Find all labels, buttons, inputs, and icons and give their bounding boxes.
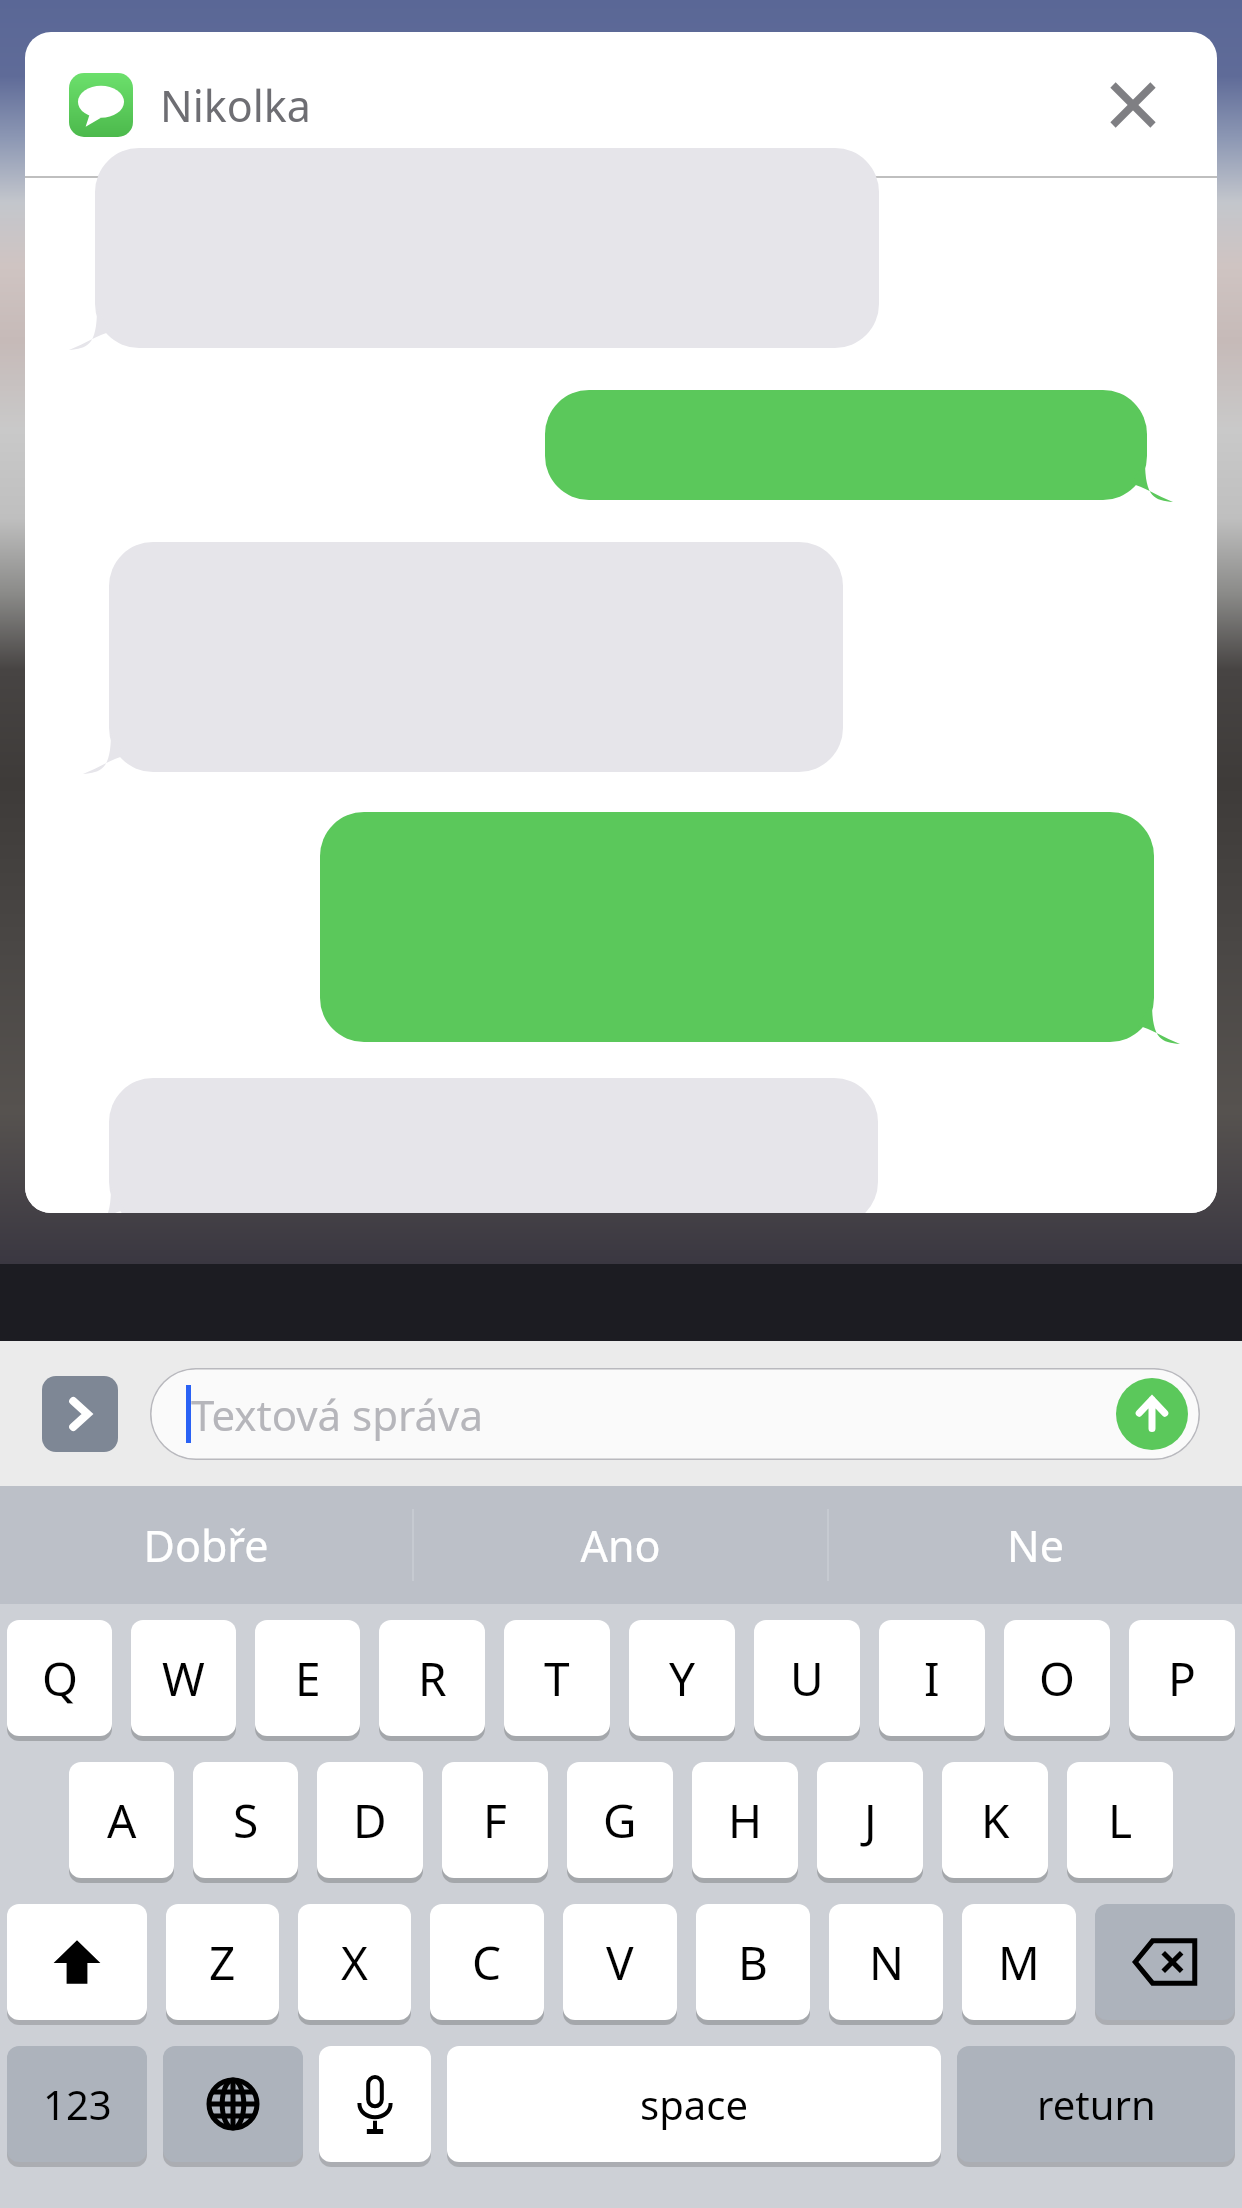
staticText: Q [42,1647,78,1710]
staticText: B [738,1931,768,1994]
staticText: V [606,1931,634,1994]
button[interactable]: J [817,1762,923,1878]
button[interactable]: C [430,1904,544,2020]
button[interactable]: I [879,1620,985,1736]
staticText: P [1168,1647,1196,1710]
staticText: I [924,1647,940,1710]
staticText: D [353,1789,387,1852]
staticText: Nikolka [160,76,311,135]
staticText: A [107,1789,137,1852]
button[interactable]: Ano [414,1486,827,1604]
button[interactable]: U [754,1620,860,1736]
staticText: W [162,1647,205,1710]
button[interactable]: P [1129,1620,1235,1736]
staticText: J [864,1789,877,1852]
staticText: Ne [1007,1516,1064,1575]
staticText: G [603,1789,637,1852]
staticText: K [981,1789,1010,1852]
button[interactable]: F [442,1762,548,1878]
staticText: U [790,1647,824,1710]
button[interactable]: O [1004,1620,1110,1736]
staticText: E [295,1647,321,1710]
button[interactable]: Z [166,1904,279,2020]
staticText: space [640,2077,748,2131]
staticText: Textová správa [191,1386,483,1443]
button[interactable]: M [962,1904,1076,2020]
button[interactable]: A [69,1762,174,1878]
staticText: X [341,1931,368,1994]
button[interactable]: W [131,1620,236,1736]
staticText: M [998,1931,1040,1994]
staticText: R [418,1647,447,1710]
button[interactable]: X [298,1904,411,2020]
button[interactable]: N [829,1904,943,2020]
button[interactable]: Ne [829,1486,1242,1604]
button[interactable]: Textová správa [150,1368,1200,1460]
staticText: C [472,1931,502,1994]
button[interactable]: More options [42,1376,118,1452]
button[interactable]: Close [1085,57,1181,153]
button[interactable]: Dictate [319,2046,431,2162]
staticText: 123 [43,2077,112,2131]
button[interactable]: Change language [163,2046,303,2162]
button[interactable]: return [957,2046,1235,2162]
staticText: T [544,1647,570,1710]
staticText: Ano [580,1516,661,1575]
staticText: N [869,1931,904,1994]
button[interactable]: H [692,1762,798,1878]
staticText: S [233,1789,259,1852]
staticText: F [483,1789,507,1852]
staticText: L [1108,1789,1133,1852]
staticText: Y [669,1647,696,1710]
staticText: Dobře [143,1516,269,1575]
button[interactable]: Numbers [7,2046,147,2162]
button[interactable]: V [563,1904,677,2020]
button[interactable]: Q [7,1620,112,1736]
button[interactable]: R [379,1620,485,1736]
button[interactable]: K [942,1762,1048,1878]
staticText: Z [209,1931,236,1994]
button[interactable]: E [255,1620,360,1736]
staticText: O [1039,1647,1075,1710]
button[interactable]: T [504,1620,610,1736]
button[interactable]: Dobře [0,1486,412,1604]
button[interactable]: space [447,2046,941,2162]
button[interactable]: D [317,1762,423,1878]
button[interactable]: Shift [7,1904,147,2020]
staticText: return [1037,2077,1156,2131]
button[interactable]: Y [629,1620,735,1736]
button[interactable]: Backspace [1095,1904,1235,2020]
button[interactable]: S [193,1762,298,1878]
staticText: H [728,1789,763,1852]
button[interactable]: G [567,1762,673,1878]
button[interactable]: L [1067,1762,1173,1878]
button[interactable]: B [696,1904,810,2020]
button[interactable]: Send [1116,1378,1188,1450]
